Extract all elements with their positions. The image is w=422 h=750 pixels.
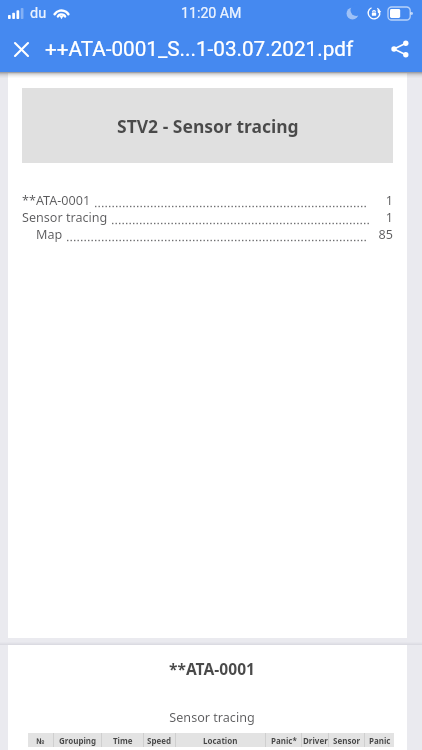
staticText: Location — [203, 735, 238, 746]
staticText: **ATA-0001 — [17, 658, 407, 679]
staticText: du — [30, 5, 47, 22]
staticText: Sensor tracing — [22, 209, 108, 226]
staticText: 1 — [372, 192, 393, 209]
staticText: 11:20 AM — [181, 5, 242, 22]
staticText: Sensor tracing — [17, 709, 407, 726]
staticText: **ATA-0001 — [22, 192, 91, 209]
staticText: Panic* — [271, 735, 297, 746]
staticText: 85 — [372, 226, 393, 243]
staticText: ++ATA-0001_S...1-03.07.2021.pdf — [45, 37, 354, 61]
staticText: Grouping — [59, 735, 97, 746]
staticText: Panic — [369, 735, 391, 746]
staticText: 1 — [372, 209, 393, 226]
staticText: № — [36, 735, 45, 746]
staticText: Map — [36, 226, 63, 243]
staticText: STV2 - Sensor tracing — [117, 114, 299, 138]
staticText: Time — [113, 735, 133, 746]
staticText: Sensor — [333, 735, 360, 746]
button[interactable]: Close — [0, 28, 42, 70]
staticText: Speed — [147, 735, 172, 746]
staticText: Driver — [303, 735, 328, 746]
button[interactable]: Share — [378, 27, 422, 71]
